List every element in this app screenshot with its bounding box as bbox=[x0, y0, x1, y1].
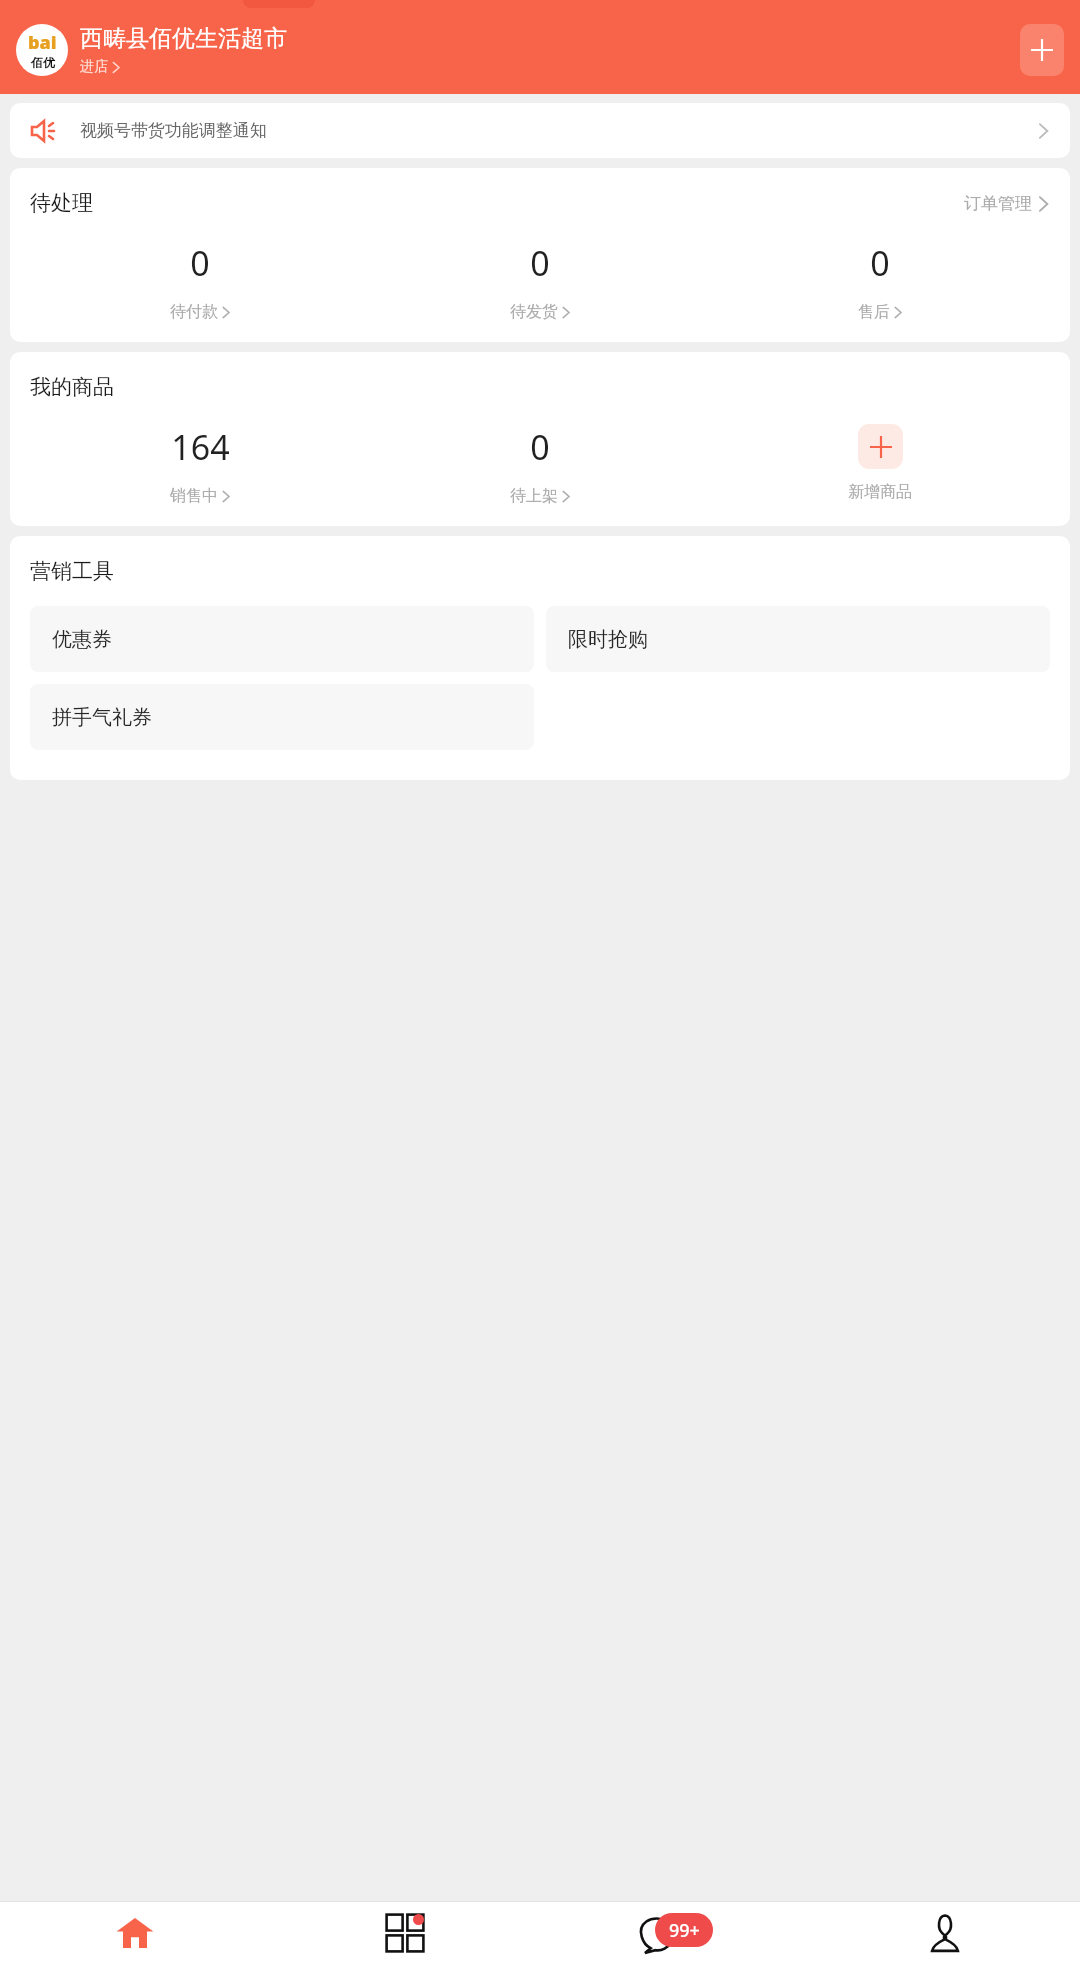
staticText: 售后 bbox=[858, 302, 890, 322]
staticText: 限时抢购 bbox=[568, 627, 648, 652]
staticText: 0 bbox=[530, 424, 550, 470]
button[interactable]: 我的 bbox=[810, 1902, 1080, 1963]
button[interactable]: 0 bbox=[30, 240, 370, 322]
button[interactable]: 添加 bbox=[1020, 24, 1064, 76]
button[interactable]: 新增商品 bbox=[710, 424, 1050, 502]
staticText: 待付款 bbox=[170, 302, 218, 322]
button[interactable]: 首页 bbox=[0, 1902, 270, 1963]
staticText: bai bbox=[28, 30, 57, 55]
staticText: 164 bbox=[171, 424, 230, 470]
button[interactable]: 限时抢购 bbox=[546, 606, 1050, 672]
staticText: 西畴县佰优生活超市 bbox=[80, 24, 287, 53]
button[interactable]: 0 bbox=[710, 240, 1050, 322]
staticText: 待发货 bbox=[510, 302, 558, 322]
staticText: 销售中 bbox=[170, 486, 218, 506]
staticText: 0 bbox=[530, 240, 550, 286]
staticText: 待上架 bbox=[510, 486, 558, 506]
staticText: 待处理 bbox=[30, 190, 93, 216]
staticText: 拼手气礼券 bbox=[52, 705, 152, 730]
staticText: 视频号带货功能调整通知 bbox=[80, 120, 267, 141]
staticText: 营销工具 bbox=[30, 558, 114, 584]
staticText: 0 bbox=[870, 240, 890, 286]
button[interactable]: 订单管理 bbox=[964, 193, 1050, 214]
staticText: 进店 bbox=[80, 58, 108, 76]
staticText: 订单管理 bbox=[964, 193, 1032, 214]
button[interactable]: 拼手气礼券 bbox=[30, 684, 534, 750]
staticText: 新增商品 bbox=[848, 482, 912, 502]
staticText: 佰优 bbox=[31, 55, 55, 70]
staticText: 0 bbox=[190, 240, 210, 286]
button[interactable]: 消息 bbox=[540, 1902, 810, 1963]
button[interactable]: 优惠券 bbox=[30, 606, 534, 672]
button[interactable]: 0 bbox=[370, 240, 710, 322]
staticText: 我的商品 bbox=[30, 374, 114, 400]
button[interactable]: 管理 bbox=[270, 1902, 540, 1963]
button[interactable]: 西畴县佰优生活超市 bbox=[80, 24, 1020, 76]
staticText: 优惠券 bbox=[52, 627, 112, 652]
button[interactable]: 店铺头像 bbox=[16, 24, 68, 76]
button[interactable]: 164 bbox=[30, 424, 370, 506]
button[interactable]: 视频号带货功能调整通知 bbox=[10, 103, 1070, 158]
button[interactable]: 0 bbox=[370, 424, 710, 506]
staticText: 99+ bbox=[669, 1918, 700, 1943]
